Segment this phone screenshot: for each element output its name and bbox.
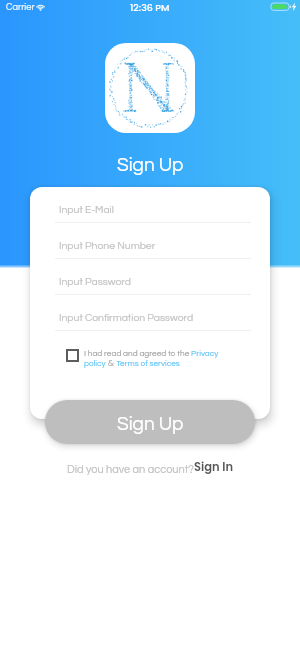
staticText: Sign Up: [117, 414, 184, 434]
staticText: Input Phone Number: [59, 240, 156, 251]
staticText: Input Confirmation Password: [59, 312, 194, 323]
staticText: Did you have an account?: [67, 464, 194, 475]
staticText: Input Password: [59, 276, 131, 287]
button[interactable]: Sign In: [194, 459, 234, 475]
button[interactable]: Input Phone Number: [30, 233, 270, 269]
other: App logo: [105, 43, 195, 133]
button[interactable]: Input Confirmation Password: [30, 305, 270, 341]
button[interactable]: Sign Up: [45, 400, 255, 444]
staticText: Carrier: [6, 2, 35, 12]
staticText: Input E-Mail: [59, 204, 114, 215]
button[interactable]: Input E-Mail: [30, 197, 270, 233]
staticText: 12:36 PM: [130, 1, 170, 14]
button[interactable]: Agree to terms checkbox: [66, 349, 79, 362]
button[interactable]: Input Password: [30, 269, 270, 305]
staticText: I had read and agreed to the Privacy pol…: [84, 349, 227, 369]
staticText: Sign Up: [117, 155, 184, 175]
